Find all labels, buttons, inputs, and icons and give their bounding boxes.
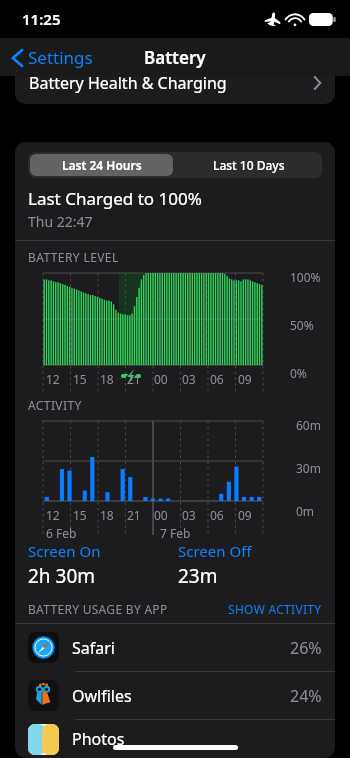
staticText: 26% [290,637,322,659]
staticText: BATTERY LEVEL [28,249,119,265]
button[interactable]: Owlfiles [15,672,335,719]
staticText: 03 [182,507,196,523]
staticText: Screen Off [178,541,252,561]
staticText: Settings [28,46,93,69]
staticText: 15 [73,507,87,523]
staticText: 21 [127,507,141,523]
button[interactable]: Screen On [28,541,101,561]
staticText: Last 10 Days [213,157,285,173]
staticText: 11:25 [22,9,61,29]
staticText: Safari [72,637,115,659]
staticText: 30m [296,460,321,476]
staticText: 06 [210,507,224,523]
button[interactable]: Safari [15,624,335,671]
staticText: Battery Health & Charging [29,76,227,94]
staticText: 00 [154,371,168,387]
staticText: 18 [100,371,114,387]
button[interactable]: Screen Off [178,541,252,561]
staticText: Last 24 Hours [62,157,142,173]
staticText: Battery [144,46,206,69]
staticText: 21 [127,371,141,387]
staticText: 60m [296,417,321,433]
staticText: 0m [296,503,315,519]
staticText: 2h 30m [28,563,96,589]
button[interactable]: Settings [8,42,97,73]
staticText: 03 [182,371,196,387]
staticText: Last Charged to 100% [28,187,202,210]
staticText: 12 [46,371,60,387]
staticText: Thu 22:47 [28,212,93,231]
button[interactable]: Last 10 Days [175,152,322,178]
staticText: 00 [154,507,168,523]
button[interactable]: SHOW ACTIVITY [228,601,322,617]
button[interactable]: Photos [15,720,335,758]
staticText: 23m [178,563,218,589]
button[interactable]: Last 24 Hours [30,154,173,176]
staticText: 0% [290,365,307,381]
staticText: 06 [210,371,224,387]
staticText: 15 [73,371,87,387]
staticText: 100% [290,269,321,285]
staticText: 24% [290,685,322,707]
staticText: 09 [238,371,252,387]
staticText: Screen On [28,541,101,561]
staticText: 12 [46,507,60,523]
staticText: 50% [290,317,314,333]
staticText: BATTERY USAGE BY APP [28,601,168,617]
staticText: SHOW ACTIVITY [228,601,322,617]
staticText: 09 [238,507,252,523]
staticText: ACTIVITY [28,397,82,413]
staticText: Photos [72,728,125,750]
staticText: Owlfiles [72,685,132,707]
staticText: 6 Feb [46,525,77,541]
staticText: 7 Feb [160,525,191,541]
button[interactable]: Battery Health & Charging [15,76,335,104]
staticText: 18 [100,507,114,523]
